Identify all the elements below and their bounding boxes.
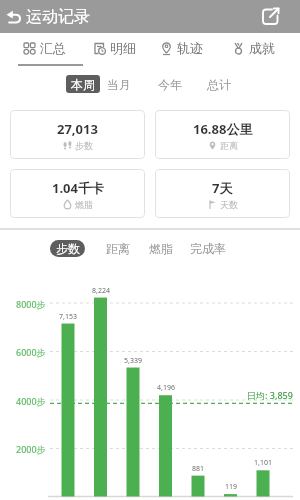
staticText: 燃脂	[75, 199, 93, 210]
staticText: 4,196	[157, 383, 175, 393]
staticText: 119	[225, 482, 238, 492]
staticText: 本周	[71, 77, 95, 92]
staticText: 完成率	[190, 241, 226, 256]
staticText: 8000步	[16, 298, 46, 310]
button[interactable]: 轨迹	[160, 38, 203, 58]
button[interactable]: 本周	[66, 75, 100, 93]
button[interactable]: 成就	[232, 38, 275, 58]
staticText: 8,224	[92, 286, 110, 296]
staticText: 步数	[56, 241, 80, 256]
button[interactable]: 7天	[155, 169, 290, 218]
staticText: 天数	[220, 199, 238, 210]
staticText: 7天	[212, 179, 233, 197]
staticText: 距离	[106, 241, 130, 256]
staticText: 步数	[75, 140, 93, 151]
staticText: 今年	[158, 77, 182, 92]
staticText: 2000步	[16, 443, 46, 455]
staticText: 7,153	[59, 312, 77, 322]
staticText: 运动记录	[26, 7, 90, 27]
button[interactable]: 当月	[104, 75, 133, 93]
button[interactable]: 16.88公里	[155, 110, 290, 159]
button[interactable]: 总计	[204, 75, 233, 93]
staticText: 汇总	[40, 40, 66, 56]
button[interactable]: 完成率	[188, 240, 228, 257]
button[interactable]: 汇总	[23, 38, 66, 58]
button[interactable]: 燃脂	[146, 240, 175, 257]
staticText: 6000步	[16, 346, 46, 358]
button[interactable]: 距离	[103, 240, 132, 257]
staticText: 明细	[110, 40, 136, 56]
staticText: 日均: 3,859	[247, 389, 293, 401]
staticText: 轨迹	[177, 40, 203, 56]
staticText: 1,101	[254, 458, 272, 468]
button[interactable]: 明细	[93, 38, 136, 58]
button[interactable]	[250, 0, 290, 33]
button[interactable]: 1.04千卡	[10, 169, 145, 218]
staticText: 4000步	[16, 395, 46, 407]
staticText: 距离	[220, 140, 238, 151]
button[interactable]: 步数	[50, 240, 85, 257]
staticText: 27,013	[57, 120, 98, 138]
button[interactable]: 27,013	[10, 110, 145, 159]
staticText: 16.88公里	[193, 120, 253, 138]
staticText: 燃脂	[149, 241, 173, 256]
button[interactable]: 今年	[155, 75, 184, 93]
staticText: 成就	[249, 40, 275, 56]
staticText: 总计	[207, 77, 231, 92]
staticText: 1.04千卡	[52, 179, 104, 197]
staticText: 881	[192, 464, 205, 474]
staticText: 5,339	[124, 356, 142, 366]
staticText: 当月	[107, 77, 131, 92]
button[interactable]	[0, 0, 26, 33]
